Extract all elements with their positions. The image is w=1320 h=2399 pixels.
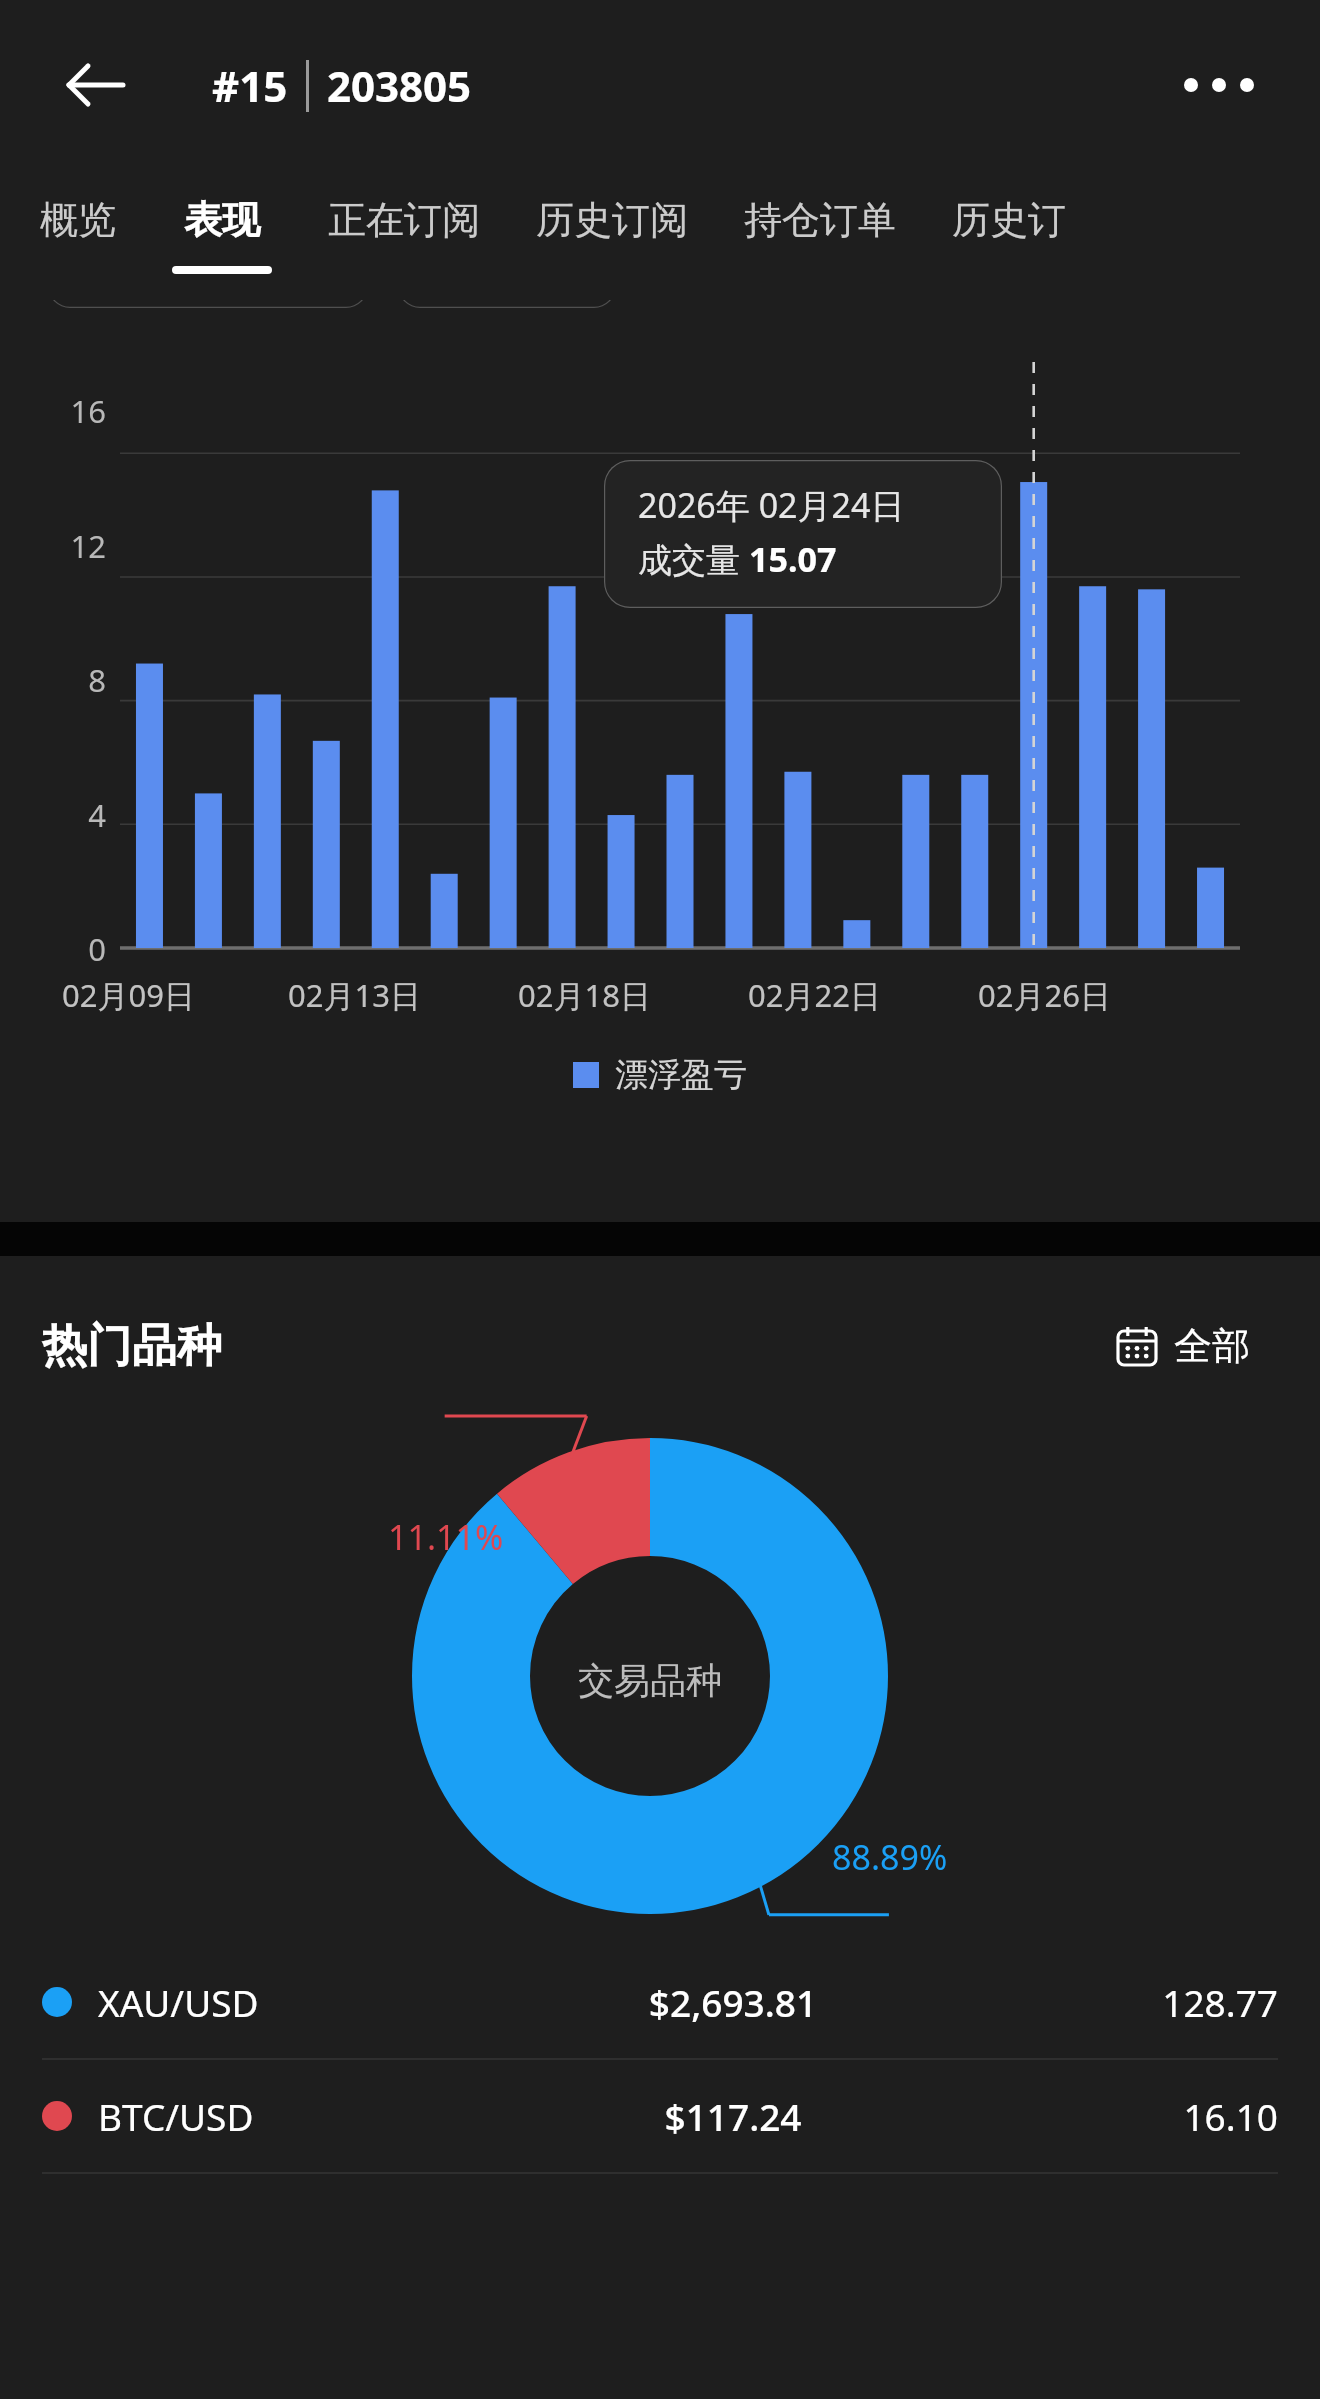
button[interactable]: XAU/USD <box>0 1946 1320 2058</box>
staticText: 02月26日 <box>978 974 1111 1016</box>
staticText: 88.89% <box>832 1834 948 1880</box>
button[interactable]: Back <box>48 37 144 133</box>
button[interactable]: More options <box>1170 58 1268 112</box>
staticText: 2026年 02月24日 <box>638 482 905 528</box>
staticText: $117.24 <box>418 2091 1048 2141</box>
button[interactable]: 历史订 <box>952 196 1066 266</box>
staticText: 203805 <box>327 57 472 114</box>
staticText: 历史订阅 <box>536 196 688 244</box>
staticText: 128.77 <box>1048 1977 1278 2027</box>
button[interactable]: 正在订阅 <box>328 196 480 266</box>
button[interactable]: 表现 <box>172 196 272 274</box>
button[interactable]: 历史订阅 <box>536 196 688 266</box>
staticText: 16 <box>44 390 106 432</box>
staticText: 12 <box>44 525 106 567</box>
staticText: 0 <box>44 928 106 970</box>
staticText: 正在订阅 <box>328 196 480 244</box>
staticText: 成交量 <box>638 536 749 582</box>
staticText: 02月09日 <box>62 974 195 1016</box>
staticText: 表现 <box>184 196 260 244</box>
staticText: 16.10 <box>1048 2091 1278 2141</box>
staticText: 02月18日 <box>518 974 651 1016</box>
staticText: 4 <box>44 794 106 836</box>
button[interactable]: 概览 <box>40 196 116 266</box>
button[interactable]: Period filter <box>48 300 368 308</box>
staticText: XAU/USD <box>98 1977 418 2027</box>
staticText: 11.11% <box>388 1514 504 1560</box>
staticText: 持仓订单 <box>744 196 896 244</box>
button[interactable]: BTC/USD <box>0 2060 1320 2172</box>
staticText: #15 <box>212 57 288 114</box>
button[interactable]: 持仓订单 <box>744 196 896 266</box>
staticText: 15.07 <box>749 536 837 582</box>
staticText: BTC/USD <box>98 2091 418 2141</box>
staticText: 02月13日 <box>288 974 421 1016</box>
staticText: 概览 <box>40 196 116 244</box>
staticText: 历史订 <box>952 196 1066 244</box>
staticText: 交易品种 <box>0 1658 1310 1703</box>
staticText: 热门品种 <box>42 1318 222 1375</box>
button[interactable]: Type filter <box>398 300 616 308</box>
staticText: 全部 <box>1174 1322 1250 1370</box>
staticText: 漂浮盈亏 <box>615 1054 747 1096</box>
staticText: 02月22日 <box>748 974 881 1016</box>
staticText: $2,693.81 <box>418 1977 1048 2027</box>
staticText: 8 <box>44 659 106 701</box>
button[interactable]: 全部 <box>1086 1304 1278 1388</box>
